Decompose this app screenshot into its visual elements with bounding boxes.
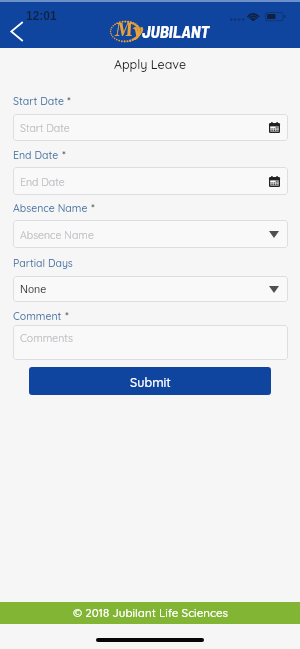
staticText: 12:01 [26,9,57,22]
staticText: * [59,148,66,161]
staticText: * [62,309,69,322]
staticText: * [64,94,71,107]
staticText: Submit [130,374,171,390]
button[interactable]: Absence Name [13,220,288,248]
staticText: Comment [13,309,62,322]
staticText: End Date [20,175,65,188]
staticText: JUBILANT [142,21,210,41]
staticText: Comments [20,331,74,344]
staticText: My [115,20,155,42]
staticText: Absence Name [20,228,94,241]
staticText: Absence Name [13,201,88,214]
button[interactable]: Comments [13,325,288,360]
button[interactable]: Back [2,16,32,46]
button[interactable]: Start Date [13,114,288,141]
staticText: None [20,283,47,295]
staticText: * [88,201,95,214]
button[interactable]: None [13,276,288,302]
button[interactable]: End Date [13,167,288,195]
staticText: Start Date [13,94,64,107]
staticText: End Date [13,148,59,161]
staticText: © 2018 Jubilant Life Sciences [73,605,228,619]
button[interactable]: Submit [29,367,271,395]
staticText: Apply Leave [0,56,300,72]
staticText: Partial Days [13,256,73,269]
staticText: Start Date [20,121,70,134]
